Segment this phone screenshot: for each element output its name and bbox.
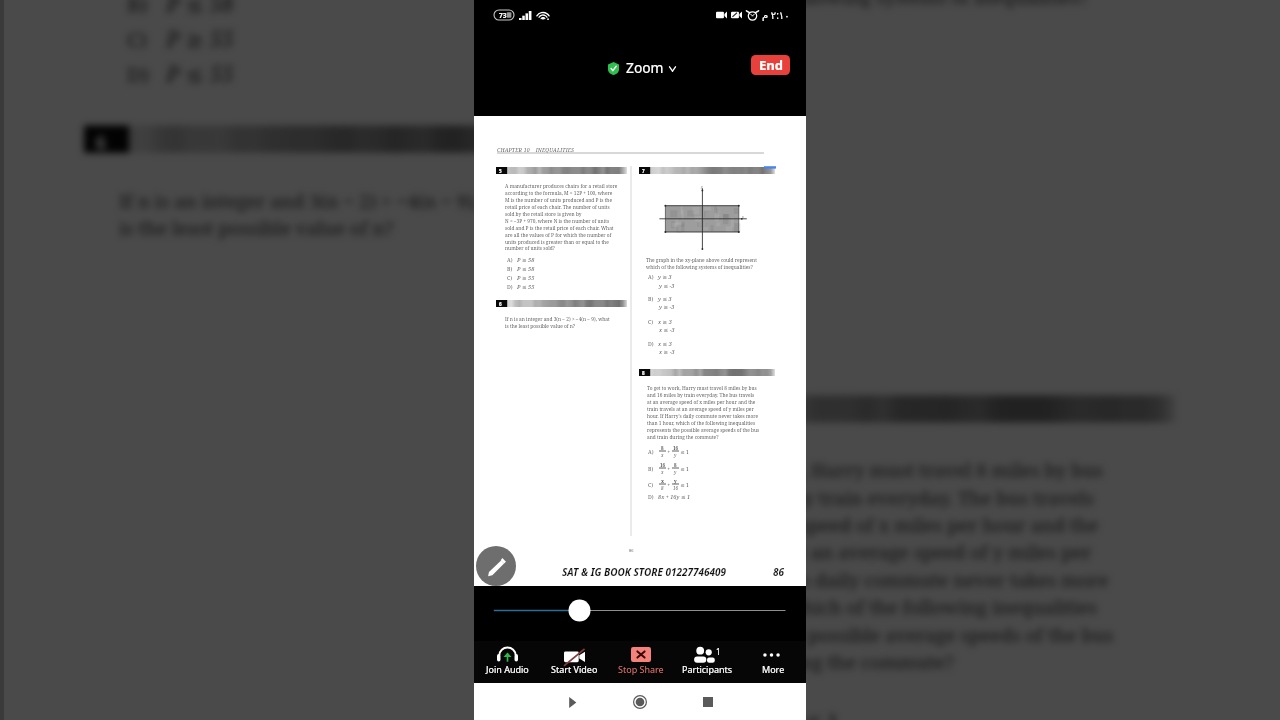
staticText: y ≤ −3 [659, 282, 675, 290]
staticText: x ≤ 3 [658, 340, 672, 348]
staticText: represents the possible average speeds o… [647, 427, 760, 434]
staticText: D) [507, 283, 517, 290]
button[interactable]: Start Video [541, 641, 608, 683]
staticText: If n is an integer and 3(n − 2) > −4(n −… [119, 188, 530, 215]
staticText: 16 [673, 485, 679, 491]
button[interactable]: Annotate [476, 546, 516, 586]
staticText: N = −3P + 970, where N is the number of … [505, 218, 610, 225]
staticText: hour. If Harry's daily commute never tak… [674, 567, 1112, 595]
staticText: To get to work, Harry must travel 8 mile… [647, 385, 757, 392]
staticText: 8x + 16y ≤ 1 [658, 493, 691, 501]
staticText: ‭م ٢:١٠ [762, 8, 790, 22]
staticText: + [666, 448, 672, 455]
staticText: y [674, 478, 677, 484]
staticText: Join Audio [486, 663, 529, 675]
button[interactable]: End [751, 55, 790, 75]
staticText: Zoom [626, 58, 664, 77]
staticText: 8 [661, 445, 664, 451]
staticText: A) [507, 256, 517, 263]
staticText: x [742, 215, 744, 219]
staticText: x [661, 469, 664, 475]
staticText: y ≤ 3 [717, 106, 772, 137]
button[interactable]: Stop Share [608, 641, 674, 683]
button[interactable]: 1 [674, 641, 740, 683]
staticText: P ≤ 58 [166, 0, 236, 20]
staticText: and 16 miles by train everyday. The bus … [674, 485, 1097, 513]
staticText: P ≥ 58 [517, 256, 535, 264]
staticText: 8 [661, 485, 664, 491]
staticText: A) [648, 448, 659, 455]
button[interactable] [474, 586, 806, 641]
button[interactable]: More [740, 641, 806, 683]
staticText: sold and P is the retail price of each c… [505, 225, 614, 232]
staticText: train travels at an average speed of y m… [674, 540, 1093, 567]
staticText: y ≥ −3 [721, 137, 784, 168]
staticText: y ≥ 3 [717, 20, 772, 51]
button[interactable]: Zoom [608, 59, 676, 78]
button[interactable]: Join Audio [474, 641, 541, 683]
staticText: y ≥ −3 [659, 303, 675, 311]
staticText: are all the values of P for which the nu… [505, 232, 612, 239]
staticText: P ≤ 58 [517, 265, 535, 273]
staticText: y [674, 452, 677, 458]
staticText: 8 [674, 462, 677, 468]
staticText: than 1 hour, which of the following ineq… [647, 420, 756, 427]
staticText: x ≤ −3 [659, 326, 675, 334]
staticText: 16 [660, 462, 666, 468]
staticText: x [661, 478, 664, 484]
staticText: A) [678, 704, 721, 720]
staticText: 8 [655, 399, 667, 423]
staticText: and train during the commute? [674, 649, 956, 677]
button[interactable]: Back [559, 689, 585, 715]
staticText: ≤ 1 [679, 465, 689, 472]
staticText: 73 [499, 11, 507, 20]
staticText: C) [678, 196, 717, 223]
staticText: 16 [673, 445, 679, 451]
staticText: + [666, 465, 672, 472]
staticText: A) [648, 273, 658, 280]
staticText: x [661, 452, 664, 458]
staticText: M is the number of units produced and P … [505, 197, 612, 204]
staticText: units produced is greater than or equal … [505, 239, 609, 246]
staticText: at an average speed of x miles per hour … [647, 399, 756, 406]
staticText: C) [127, 24, 166, 51]
staticText: A manufacturer produces chairs for a ret… [505, 183, 618, 190]
staticText: y ≤ −3 [721, 55, 784, 86]
button[interactable]: Home [627, 689, 653, 715]
staticText: D) [648, 340, 658, 347]
button[interactable]: Recent apps [695, 689, 721, 715]
staticText: P ≥ 55 [166, 24, 236, 55]
staticText: train travels at an average speed of y m… [647, 406, 754, 413]
staticText: ≤ 1 [679, 481, 689, 488]
staticText: C) [648, 318, 658, 325]
staticText: according to the formula, M = 12P + 100,… [505, 190, 613, 197]
staticText: P ≤ 55 [166, 59, 236, 90]
staticText: x ≥ −3 [659, 348, 675, 356]
staticText: at an average speed of x miles per hour … [674, 512, 1101, 540]
staticText: 86 [629, 548, 634, 553]
staticText: D) [127, 59, 166, 86]
staticText: y [701, 185, 703, 189]
staticText: SAT & IG BOOK STORE 01227746409 [562, 565, 727, 579]
staticText: x ≥ 3 [658, 318, 672, 326]
staticText: y ≥ 3 [658, 273, 672, 281]
staticText: x ≤ −3 [721, 227, 784, 258]
staticText: which of the following systems of inequa… [646, 264, 753, 271]
staticText: number of units sold? [505, 245, 555, 252]
staticText: retail price of each chair. The number o… [505, 204, 610, 211]
staticText: 6 [96, 129, 107, 153]
staticText: CHAPTER 10 INEQUALITIES [497, 146, 575, 153]
staticText: 8 [642, 370, 645, 376]
staticText: D) [648, 493, 658, 500]
staticText: 5 [499, 168, 502, 174]
staticText: 6 [499, 301, 502, 307]
staticText: More [762, 663, 785, 675]
staticText: and 16 miles by train everyday. The bus … [647, 392, 755, 399]
staticText: B) [648, 465, 659, 472]
staticText: B) [648, 295, 658, 302]
